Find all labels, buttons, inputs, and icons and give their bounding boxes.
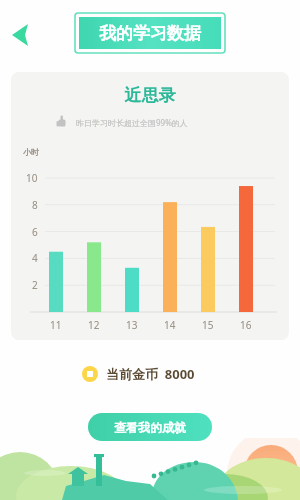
button[interactable]: Back [0,0,44,44]
button[interactable] [0,0,300,500]
button[interactable] [0,0,300,500]
